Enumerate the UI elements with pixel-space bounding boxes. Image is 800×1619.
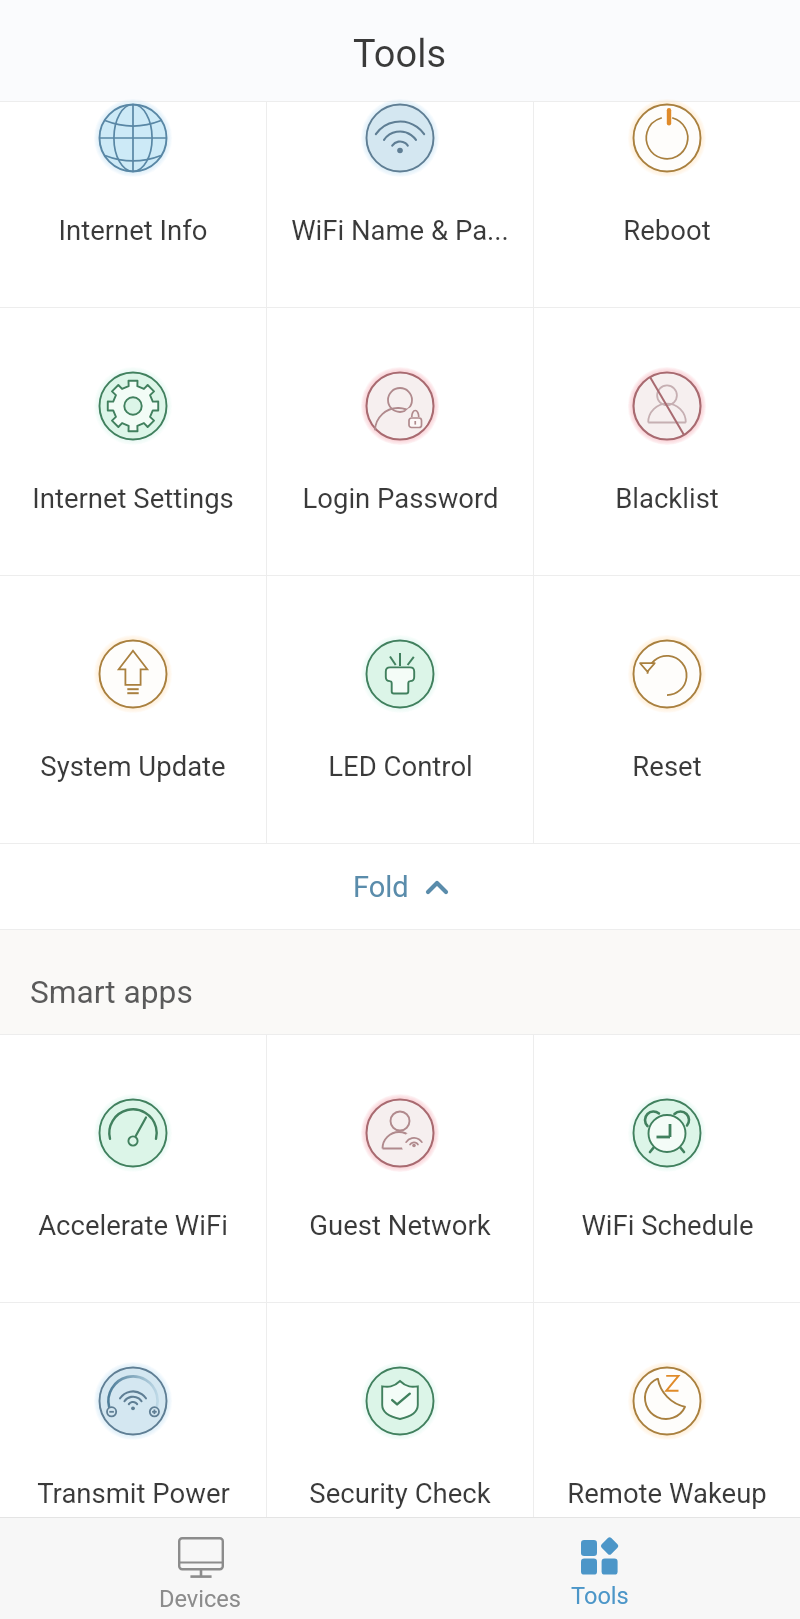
button[interactable]: WiFi Name & Pa... bbox=[267, 102, 533, 307]
staticText: Devices bbox=[159, 1585, 242, 1613]
staticText: Security Check bbox=[309, 1477, 491, 1509]
button[interactable]: Tools bbox=[400, 1518, 800, 1619]
staticText: WiFi Schedule bbox=[581, 1209, 754, 1241]
button[interactable]: Devices bbox=[0, 1518, 400, 1619]
staticText: Transmit Power bbox=[37, 1477, 230, 1509]
button[interactable]: Security Check bbox=[267, 1303, 533, 1517]
staticText: Smart apps bbox=[30, 974, 193, 1011]
staticText: Tools bbox=[571, 1582, 629, 1610]
button[interactable]: Blacklist bbox=[534, 308, 800, 575]
staticText: LED Control bbox=[328, 750, 473, 782]
staticText: Login Password bbox=[302, 482, 499, 514]
button[interactable]: Transmit Power bbox=[0, 1303, 266, 1517]
staticText: Reboot bbox=[623, 214, 711, 245]
button[interactable]: System Update bbox=[0, 576, 266, 843]
button[interactable]: Internet Settings bbox=[0, 308, 266, 575]
button[interactable]: Guest Network bbox=[267, 1035, 533, 1302]
button[interactable]: WiFi Schedule bbox=[534, 1035, 800, 1302]
staticText: Internet Settings bbox=[32, 482, 234, 514]
staticText: Internet Info bbox=[58, 214, 208, 245]
staticText: Tools bbox=[353, 32, 447, 77]
button[interactable]: Login Password bbox=[267, 308, 533, 575]
button[interactable]: Remote Wakeup bbox=[534, 1303, 800, 1517]
staticText: System Update bbox=[40, 750, 226, 782]
staticText: Fold bbox=[353, 870, 409, 904]
staticText: Blacklist bbox=[615, 482, 719, 514]
staticText: WiFi Name & Pa... bbox=[291, 214, 509, 245]
staticText: Reset bbox=[632, 750, 702, 782]
button[interactable]: LED Control bbox=[267, 576, 533, 843]
button[interactable]: Fold bbox=[0, 844, 800, 929]
button[interactable]: Reboot bbox=[534, 102, 800, 307]
button[interactable]: Accelerate WiFi bbox=[0, 1035, 266, 1302]
button[interactable]: Internet Info bbox=[0, 102, 266, 307]
button[interactable]: Reset bbox=[534, 576, 800, 843]
staticText: Guest Network bbox=[309, 1209, 491, 1241]
other: Tools bbox=[581, 1537, 619, 1575]
staticText: Accelerate WiFi bbox=[38, 1209, 228, 1241]
staticText: Remote Wakeup bbox=[567, 1477, 767, 1509]
other: Devices bbox=[178, 1537, 224, 1578]
